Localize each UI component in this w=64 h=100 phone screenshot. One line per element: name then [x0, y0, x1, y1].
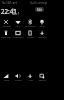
button[interactable]: Sound — [12, 73, 24, 85]
staticText: Data — [4, 79, 9, 82]
staticText: Nov 1 — [12, 12, 20, 16]
staticText: Edit — [37, 8, 42, 12]
button[interactable]: Screen record — [36, 73, 48, 85]
button[interactable]: Flashlight — [0, 30, 12, 42]
button[interactable]: Internet — [0, 19, 12, 31]
button[interactable]: Silent — [36, 19, 48, 31]
staticText: Wi-Fi — [15, 25, 21, 28]
button[interactable]: Screen cast — [24, 73, 36, 85]
staticText: Sound — [15, 79, 22, 82]
button[interactable]: Mobile data — [0, 73, 12, 85]
button[interactable]: Airplane mode — [36, 30, 48, 42]
staticText: Cast — [28, 79, 33, 82]
staticText: Flashlight — [1, 36, 11, 39]
staticText: Fri, — [12, 8, 17, 12]
button[interactable]: Wi-Fi — [12, 19, 24, 31]
button[interactable]: Auto rotate — [24, 30, 36, 42]
button[interactable]: Bluetooth — [24, 19, 36, 31]
staticText: Internet — [2, 25, 11, 28]
staticText: Rotate — [27, 36, 34, 39]
button[interactable]: Screenshot — [12, 30, 24, 42]
staticText: Screenshot — [12, 36, 24, 39]
staticText: Silent — [39, 25, 45, 28]
staticText: No SIM card — [2, 1, 17, 5]
staticText: Quick settings — [30, 1, 48, 5]
button[interactable]: Edit tiles — [35, 7, 44, 12]
staticText: Bluetooth — [25, 25, 36, 28]
staticText: 22:41 — [1, 7, 17, 15]
staticText: Airplane — [38, 36, 47, 39]
staticText: Record — [38, 79, 46, 82]
